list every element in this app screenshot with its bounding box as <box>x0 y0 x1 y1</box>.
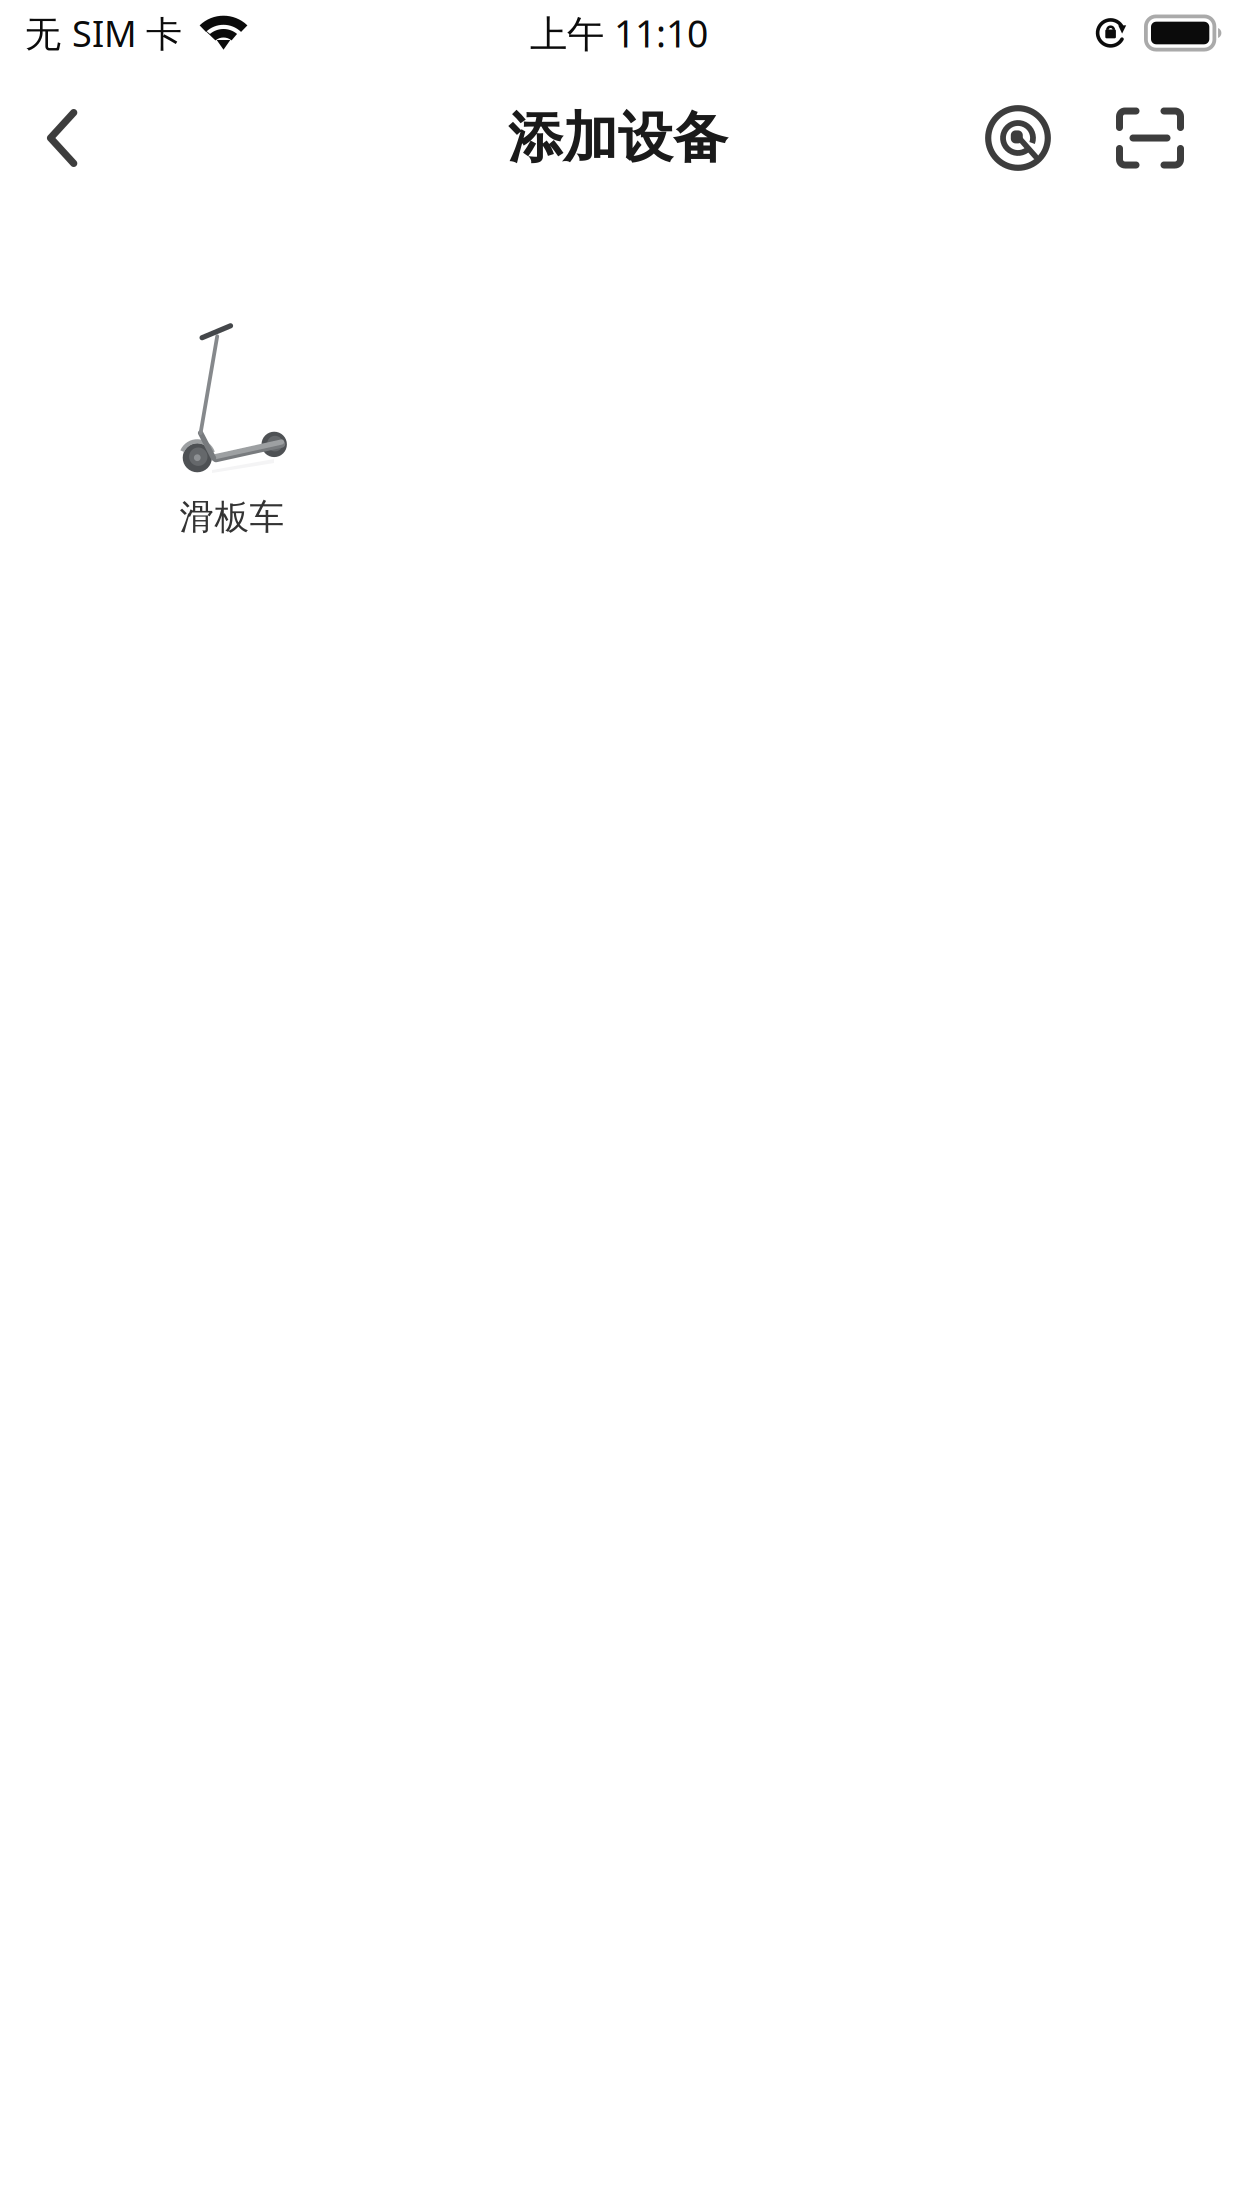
staticText: 上午 11:10 <box>530 8 708 58</box>
button[interactable]: 搜索附近设备 <box>969 80 1067 196</box>
button[interactable]: 扫一扫 <box>1101 80 1199 196</box>
button[interactable]: 返回 <box>16 80 108 196</box>
staticText: 无 SIM 卡 <box>25 9 182 57</box>
button[interactable]: 滑板车 <box>108 320 356 566</box>
staticText: 滑板车 <box>179 496 284 539</box>
staticText: 添加设备 <box>508 104 728 171</box>
